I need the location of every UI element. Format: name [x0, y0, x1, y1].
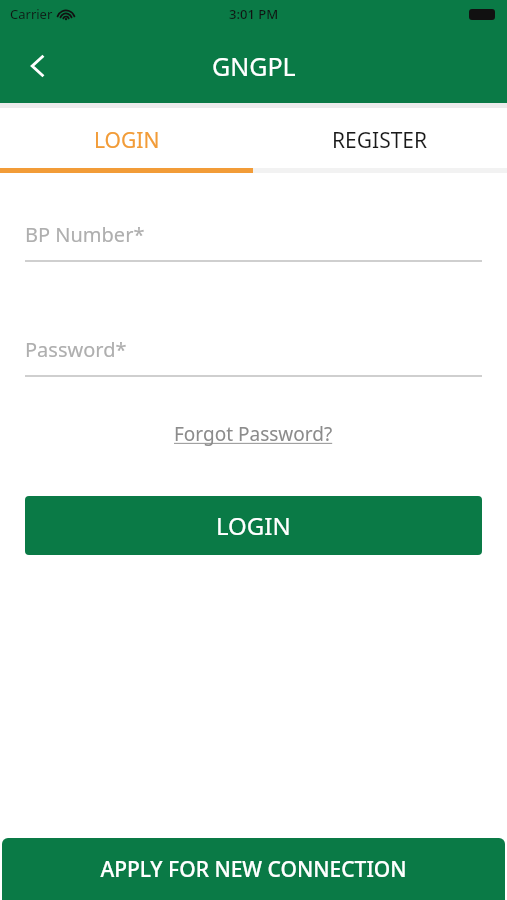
- staticText: LOGIN: [216, 509, 291, 542]
- staticText: Carrier: [10, 5, 53, 23]
- staticText: GNGPL: [212, 49, 296, 83]
- staticText: Password*: [25, 336, 127, 363]
- staticText: 3:01 PM: [229, 5, 279, 23]
- button[interactable]: REGISTER: [253, 108, 507, 173]
- button[interactable]: LOGIN: [25, 496, 482, 555]
- button[interactable]: APPLY FOR NEW CONNECTION: [2, 838, 505, 900]
- staticText: LOGIN: [94, 126, 160, 155]
- button[interactable]: Back: [14, 42, 62, 90]
- button[interactable]: LOGIN: [0, 108, 253, 173]
- staticText: BP Number*: [25, 221, 145, 248]
- button[interactable]: Forgot Password?: [166, 417, 341, 451]
- staticText: APPLY FOR NEW CONNECTION: [100, 855, 407, 884]
- staticText: REGISTER: [332, 126, 428, 155]
- staticText: Forgot Password?: [174, 421, 333, 447]
